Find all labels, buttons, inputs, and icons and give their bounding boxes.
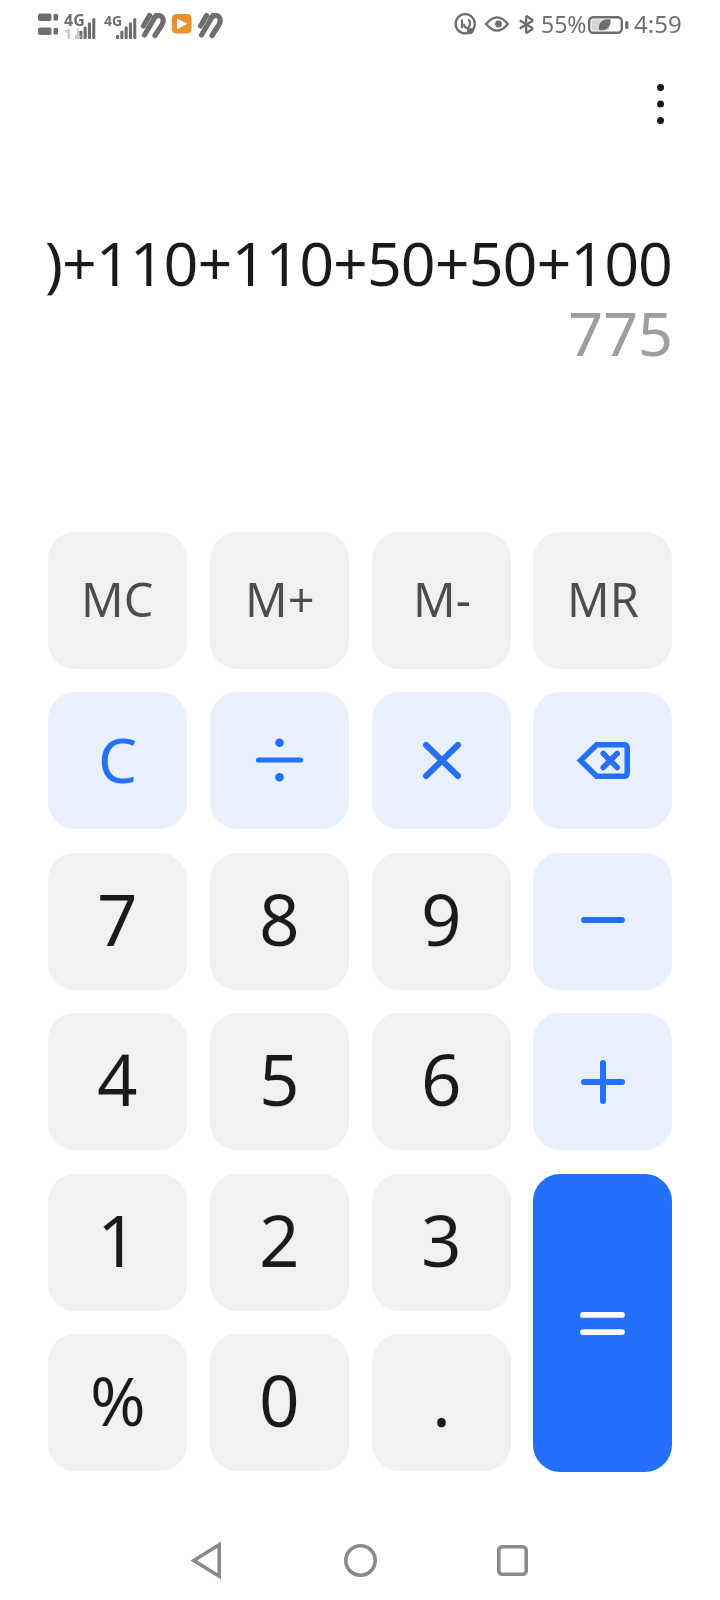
staticText: .: [432, 1351, 452, 1448]
button[interactable]: Plus: [533, 1013, 672, 1150]
button[interactable]: 6: [372, 1013, 511, 1150]
button[interactable]: 8: [210, 853, 349, 990]
staticText: %: [90, 1354, 146, 1445]
staticText: 8: [259, 870, 300, 967]
button[interactable]: MC: [48, 532, 187, 669]
staticText: MC: [81, 567, 154, 631]
staticText: 4: [97, 1030, 138, 1127]
staticText: )+110+110+50+50+100: [44, 221, 672, 304]
staticText: 9: [421, 870, 462, 967]
staticText: 7: [97, 870, 138, 967]
button[interactable]: M+: [210, 532, 349, 669]
button[interactable]: M-: [372, 532, 511, 669]
button[interactable]: Minus: [533, 853, 672, 990]
staticText: 4G: [104, 11, 123, 30]
staticText: 2: [259, 1191, 300, 1288]
button[interactable]: MR: [533, 532, 672, 669]
staticText: 4:59: [634, 7, 682, 40]
staticText: 4G: [64, 9, 85, 31]
staticText: C: [98, 717, 138, 801]
button[interactable]: 0: [210, 1334, 349, 1471]
button[interactable]: C: [48, 692, 187, 829]
button[interactable]: %: [48, 1334, 187, 1471]
staticText: 775: [568, 291, 673, 361]
button[interactable]: 7: [48, 853, 187, 990]
button[interactable]: 5: [210, 1013, 349, 1150]
staticText: M-: [413, 567, 471, 631]
button[interactable]: 3: [372, 1174, 511, 1311]
staticText: 5: [259, 1030, 300, 1127]
button[interactable]: Multiply: [372, 692, 511, 829]
button[interactable]: More options: [620, 64, 700, 144]
button[interactable]: 4: [48, 1013, 187, 1150]
button[interactable]: Equals: [533, 1174, 672, 1472]
staticText: 1: [97, 1191, 138, 1288]
staticText: 3: [421, 1191, 462, 1288]
staticText: MR: [567, 567, 639, 631]
staticText: 55%: [541, 8, 587, 39]
button[interactable]: Backspace: [533, 692, 672, 829]
staticText: 1↓: [64, 24, 84, 43]
button[interactable]: 2: [210, 1174, 349, 1311]
button[interactable]: 9: [372, 853, 511, 990]
button[interactable]: Back: [161, 1515, 251, 1600]
button[interactable]: .: [372, 1334, 511, 1471]
button[interactable]: Recents: [467, 1515, 557, 1600]
button[interactable]: Home: [315, 1515, 405, 1600]
button[interactable]: 1: [48, 1174, 187, 1311]
staticText: 6: [421, 1030, 462, 1127]
button[interactable]: Divide: [210, 692, 349, 829]
staticText: 0: [259, 1351, 300, 1448]
staticText: M+: [245, 567, 315, 631]
